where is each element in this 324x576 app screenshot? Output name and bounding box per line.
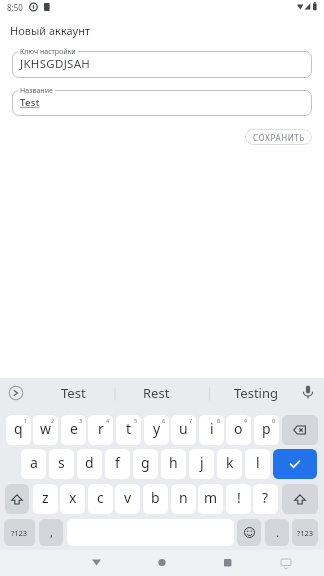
button[interactable]: Test — [12, 90, 312, 116]
button[interactable]: d — [77, 449, 102, 479]
button[interactable]: ? — [253, 484, 278, 514]
staticText: Новый аккаунт — [10, 23, 91, 38]
staticText: d — [85, 453, 94, 472]
button[interactable]: u — [171, 415, 196, 445]
button[interactable]: e — [61, 415, 86, 445]
button[interactable]: Rest — [112, 384, 200, 402]
button[interactable]: Testing — [212, 384, 300, 402]
staticText: 8:50 — [7, 2, 23, 13]
button[interactable]: q — [6, 415, 31, 445]
staticText: 8 — [217, 417, 221, 424]
staticText: a — [30, 453, 38, 472]
staticText: 6 — [162, 417, 166, 424]
button[interactable] — [273, 449, 317, 479]
staticText: q — [14, 419, 23, 438]
button[interactable]: g — [133, 449, 158, 479]
button[interactable]: f — [105, 449, 130, 479]
staticText: Test — [20, 96, 40, 109]
button[interactable]: Test — [29, 384, 117, 402]
button[interactable]: n — [171, 484, 196, 514]
staticText: e — [70, 419, 78, 438]
staticText: y — [153, 419, 161, 438]
button[interactable]: . — [265, 519, 289, 546]
button[interactable]: v — [115, 484, 140, 514]
staticText: j — [200, 453, 204, 472]
staticText: l — [256, 453, 260, 472]
staticText: 2 — [51, 417, 55, 424]
button[interactable]: w — [33, 415, 58, 445]
staticText: i — [210, 419, 214, 438]
staticText: Rest — [143, 384, 170, 402]
button[interactable]: j — [189, 449, 214, 479]
button[interactable]: y — [144, 415, 169, 445]
button[interactable]: r — [88, 415, 113, 445]
staticText: r — [98, 419, 104, 438]
button[interactable] — [145, 550, 179, 576]
staticText: ?123 — [11, 528, 28, 538]
button[interactable] — [211, 550, 245, 576]
button[interactable]: b — [143, 484, 168, 514]
staticText: h — [169, 453, 178, 472]
staticText: t — [126, 419, 132, 438]
staticText: u — [179, 419, 188, 438]
staticText: k — [226, 453, 234, 472]
staticText: x — [69, 488, 77, 507]
staticText: c — [97, 488, 104, 507]
staticText: Testing — [234, 384, 278, 402]
button[interactable] — [282, 415, 318, 445]
staticText: 0 — [272, 417, 276, 424]
staticText: 3 — [79, 417, 83, 424]
staticText: ? — [262, 488, 269, 507]
staticText: СОХРАНИТЬ — [253, 132, 305, 143]
button[interactable]: k — [217, 449, 242, 479]
staticText: n — [179, 488, 188, 507]
button[interactable]: m — [198, 484, 223, 514]
staticText: 7 — [189, 417, 193, 424]
staticText: g — [141, 453, 150, 472]
staticText: p — [262, 419, 271, 438]
staticText: Test — [61, 384, 86, 402]
button[interactable]: ?123 — [292, 519, 318, 546]
button[interactable] — [5, 484, 29, 514]
staticText: ?123 — [297, 528, 314, 538]
button[interactable] — [282, 484, 318, 514]
button[interactable]: ! — [226, 484, 251, 514]
button[interactable]: h — [161, 449, 186, 479]
staticText: v — [124, 488, 132, 507]
staticText: , — [50, 525, 53, 540]
button[interactable]: i — [199, 415, 224, 445]
button[interactable]: p — [254, 415, 279, 445]
button[interactable]: СОХРАНИТЬ — [245, 129, 312, 145]
staticText: Название — [20, 86, 53, 96]
staticText: o — [234, 419, 243, 438]
button[interactable]: z — [33, 484, 58, 514]
button[interactable]: JKHSGDJSAH — [12, 51, 312, 78]
staticText: Ключ настройки — [20, 47, 76, 57]
button[interactable]: c — [88, 484, 113, 514]
button[interactable]: ?123 — [4, 519, 35, 546]
button[interactable]: s — [49, 449, 74, 479]
staticText: w — [40, 419, 52, 438]
button[interactable]: t — [116, 415, 141, 445]
button[interactable]: x — [60, 484, 85, 514]
staticText: s — [58, 453, 65, 472]
staticText: m — [204, 488, 218, 507]
button[interactable]: a — [21, 449, 46, 479]
button[interactable]: , — [39, 519, 63, 546]
staticText: 9 — [244, 417, 248, 424]
staticText: 4 — [106, 417, 110, 424]
staticText: . — [276, 525, 279, 540]
button[interactable]: l — [245, 449, 270, 479]
staticText: 1 — [24, 417, 28, 424]
button[interactable]: o — [226, 415, 251, 445]
staticText: f — [115, 453, 120, 472]
button[interactable] — [237, 519, 261, 546]
staticText: b — [151, 488, 160, 507]
staticText: 5 — [134, 417, 138, 424]
staticText: ! — [237, 488, 241, 507]
staticText: z — [42, 488, 49, 507]
button[interactable] — [80, 550, 114, 576]
staticText: JKHSGDJSAH — [20, 56, 91, 72]
